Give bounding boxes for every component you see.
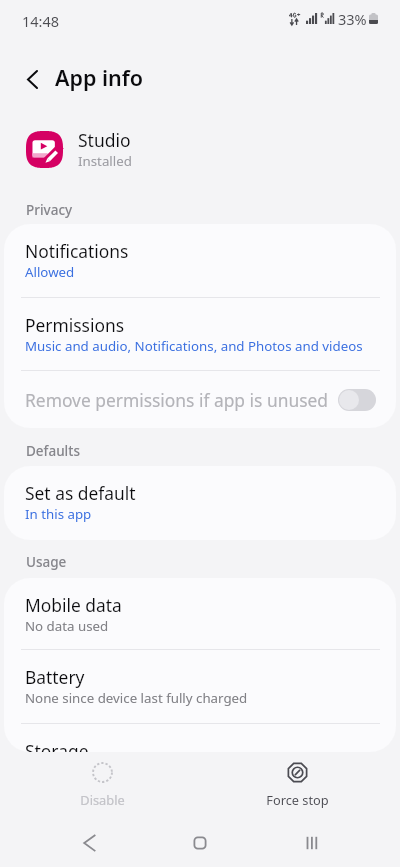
staticText: Permissions xyxy=(25,313,125,337)
button[interactable]: Storage xyxy=(4,724,396,752)
button[interactable]: Notifications xyxy=(4,224,396,297)
staticText: Installed xyxy=(78,152,132,170)
button[interactable]: Battery xyxy=(4,650,396,723)
button[interactable]: Back xyxy=(8,55,56,103)
staticText: Remove permissions if app is unused xyxy=(25,388,338,412)
staticText: App info xyxy=(55,63,143,92)
button[interactable]: Studio xyxy=(0,119,400,181)
button[interactable]: Recents xyxy=(287,819,335,867)
staticText: None since device last fully charged xyxy=(25,689,248,707)
button[interactable]: Disable xyxy=(5,758,200,808)
staticText: No data used xyxy=(25,617,109,635)
button[interactable]: Permissions xyxy=(4,298,396,370)
staticText: Notifications xyxy=(25,239,129,263)
staticText: 33% xyxy=(338,9,367,29)
button[interactable]: Home xyxy=(176,819,224,867)
button[interactable]: Back xyxy=(65,819,113,867)
button[interactable]: Set as default xyxy=(4,466,396,540)
staticText: Mobile data xyxy=(25,593,122,617)
staticText: 14:48 xyxy=(22,11,60,31)
staticText: Allowed xyxy=(25,263,75,281)
staticText: Set as default xyxy=(25,481,136,505)
staticText: Battery xyxy=(25,665,85,689)
staticText: Studio xyxy=(78,128,131,152)
staticText: Music and audio, Notifications, and Phot… xyxy=(25,337,363,355)
staticText: In this app xyxy=(25,505,92,523)
staticText: Disable xyxy=(80,791,125,808)
staticText: Force stop xyxy=(266,791,329,808)
staticText: Usage xyxy=(26,553,67,571)
button[interactable]: Force stop xyxy=(200,758,395,808)
button[interactable]: Mobile data xyxy=(4,578,396,649)
staticText: Defaults xyxy=(26,442,80,460)
staticText: Storage xyxy=(25,739,89,752)
staticText: Privacy xyxy=(26,201,73,219)
button[interactable]: Remove permissions if app is unused xyxy=(4,371,396,428)
